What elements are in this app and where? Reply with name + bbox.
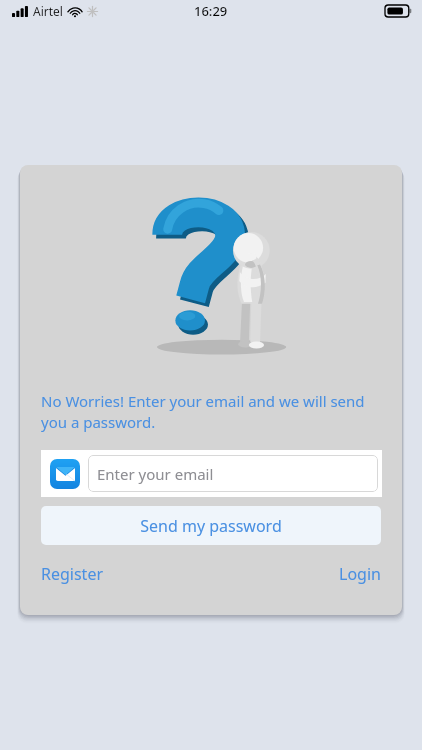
staticText: Register [41, 563, 104, 585]
staticText: 16:29 [194, 2, 228, 20]
button[interactable]: Email [50, 459, 80, 489]
button[interactable]: Login [339, 560, 381, 588]
staticText: Airtel [33, 3, 63, 19]
staticText: Enter your email [97, 464, 214, 484]
button[interactable]: Send my password [41, 506, 381, 545]
button[interactable]: Register [41, 560, 104, 588]
staticText: No Worries! Enter your email and we will… [41, 391, 381, 433]
staticText: Login [339, 563, 381, 585]
button[interactable]: Enter your email [88, 455, 378, 492]
staticText: Send my password [140, 515, 282, 537]
